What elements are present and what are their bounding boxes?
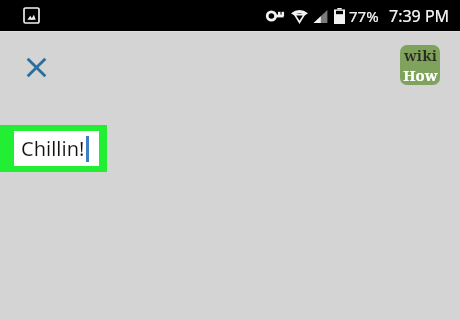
other: Mobile signal <box>313 10 328 23</box>
staticText: 7:39 PM <box>389 5 450 27</box>
staticText: Chillin! <box>21 135 85 162</box>
staticText: wiki <box>404 45 437 65</box>
button[interactable]: Close <box>18 49 55 86</box>
button[interactable]: Chillin! <box>0 125 107 172</box>
staticText: How <box>403 65 438 85</box>
staticText: 77% <box>349 6 379 26</box>
other: VPN active <box>267 9 284 23</box>
other: Battery 77 percent <box>334 8 345 24</box>
other: Image notification <box>24 8 39 23</box>
button[interactable]: wikiHow <box>400 45 440 85</box>
other: Wi-Fi <box>291 9 308 23</box>
